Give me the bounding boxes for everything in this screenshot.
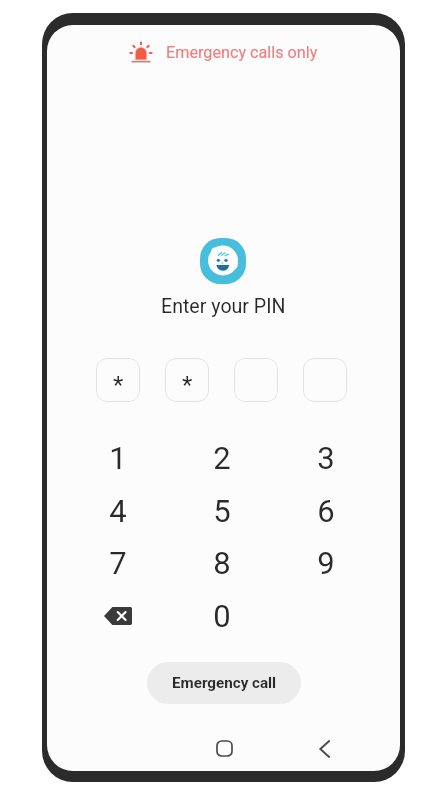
button[interactable]: 9 xyxy=(292,537,360,589)
staticText: Emergency call xyxy=(172,674,277,692)
button[interactable]: PIN digit 1 xyxy=(96,358,140,402)
button[interactable]: 3 xyxy=(292,432,360,484)
button[interactable]: 1 xyxy=(84,432,152,484)
staticText: 7 xyxy=(109,545,127,581)
staticText: * xyxy=(182,371,193,399)
button[interactable]: 5 xyxy=(188,485,256,537)
button[interactable]: App icon xyxy=(200,238,246,284)
button[interactable]: Emergency call xyxy=(147,662,301,704)
button[interactable]: 6 xyxy=(292,485,360,537)
staticText: Emergency calls only xyxy=(166,43,318,62)
staticText: 1 xyxy=(109,440,127,476)
button[interactable]: 8 xyxy=(188,537,256,589)
staticText: 5 xyxy=(213,493,231,529)
staticText: * xyxy=(113,371,124,399)
button[interactable]: 2 xyxy=(188,432,256,484)
staticText: 9 xyxy=(317,545,335,581)
button[interactable]: 4 xyxy=(84,485,152,537)
staticText: 0 xyxy=(213,598,231,634)
staticText: Enter your PIN xyxy=(161,295,286,318)
button[interactable]: PIN digit 4 xyxy=(303,358,347,402)
button[interactable]: Home xyxy=(204,728,244,768)
button[interactable]: 0 xyxy=(188,590,256,642)
button[interactable]: Back xyxy=(304,729,344,769)
staticText: 2 xyxy=(213,440,231,476)
button[interactable]: Backspace xyxy=(84,590,152,642)
staticText: 6 xyxy=(317,493,335,529)
staticText: 3 xyxy=(317,440,335,476)
staticText: 4 xyxy=(109,493,127,529)
staticText: 8 xyxy=(213,545,231,581)
button[interactable]: PIN digit 2 xyxy=(165,358,209,402)
button[interactable]: PIN digit 3 xyxy=(234,358,278,402)
button[interactable]: 7 xyxy=(84,537,152,589)
